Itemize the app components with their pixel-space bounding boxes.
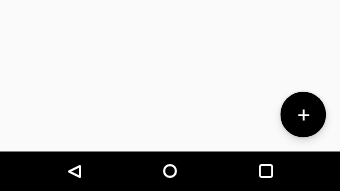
button[interactable]: Home [146,151,194,191]
button[interactable]: Add [280,92,326,138]
button[interactable]: Back [50,151,98,191]
button[interactable]: Recent apps [242,151,290,191]
